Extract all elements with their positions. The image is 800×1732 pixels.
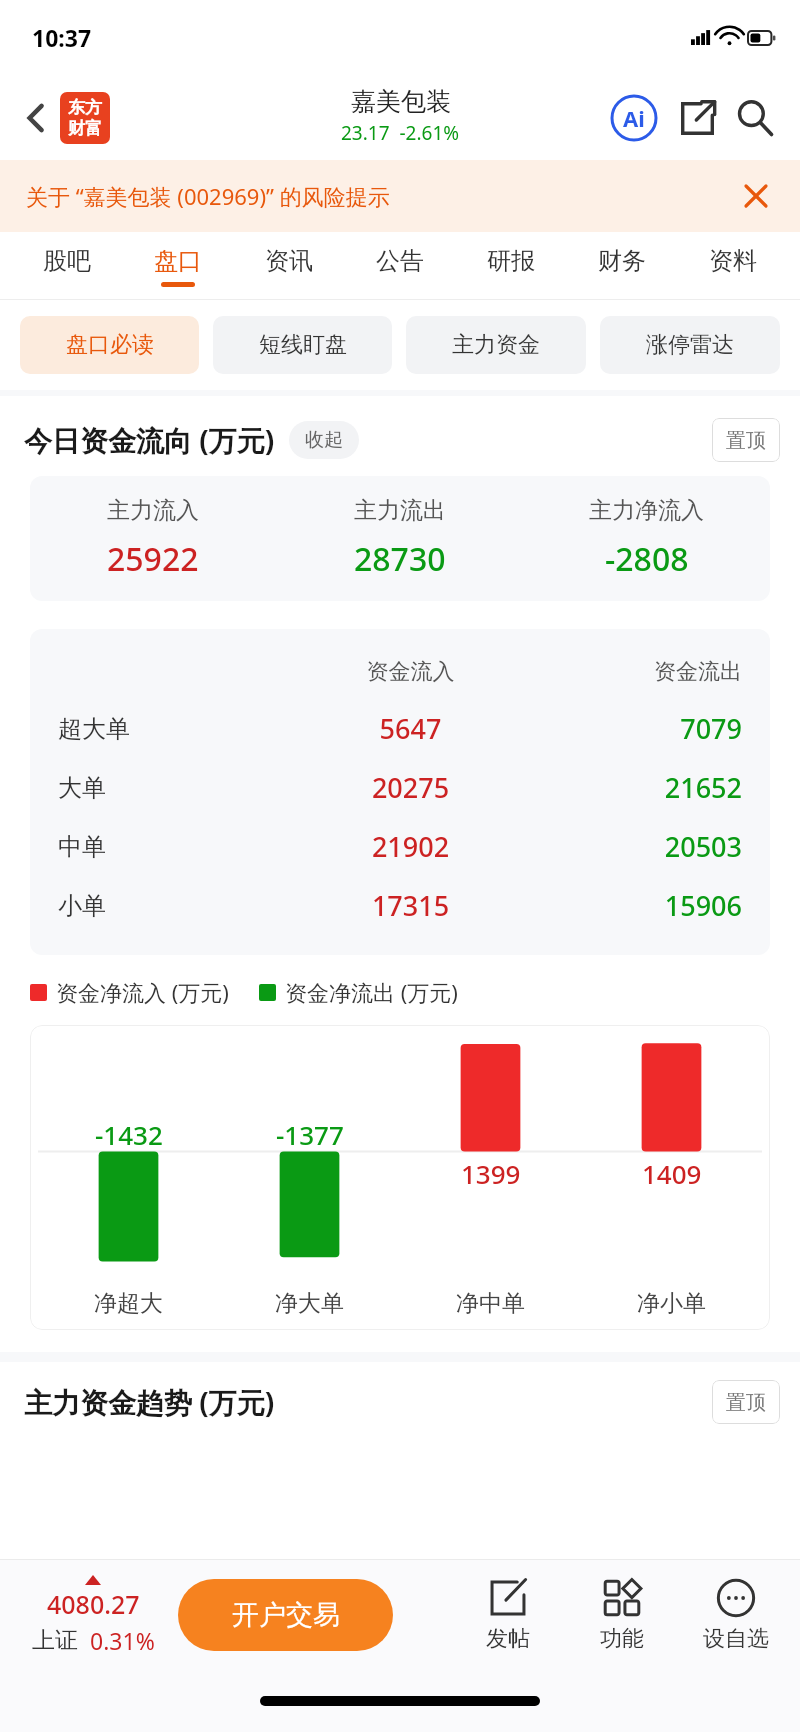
button[interactable]: 大单 <box>58 758 742 817</box>
staticText: 23.17 -2.61% <box>341 120 460 146</box>
staticText: 主力流入 <box>107 496 199 525</box>
staticText: 20503 <box>521 828 742 865</box>
staticText: Ai <box>623 103 645 133</box>
button[interactable]: 东方 <box>60 92 110 144</box>
button[interactable]: 4080.27 <box>18 1575 168 1656</box>
button[interactable]: 资讯 <box>233 232 344 300</box>
button[interactable]: Search <box>730 93 780 143</box>
staticText: 功能 <box>600 1625 644 1653</box>
button[interactable]: 中单 <box>58 817 742 876</box>
staticText: 置顶 <box>726 428 766 453</box>
staticText: 21652 <box>521 769 742 806</box>
button[interactable]: 小单 <box>58 876 742 935</box>
button[interactable]: Back <box>20 96 52 140</box>
staticText: 短线盯盘 <box>259 331 347 359</box>
staticText: 资金流入 <box>300 658 521 686</box>
staticText: 0.31% <box>90 1625 155 1656</box>
button[interactable]: 关于 “嘉美包装 (002969)” 的风险提示 <box>0 160 800 232</box>
button[interactable]: 公告 <box>344 232 455 300</box>
staticText: 公告 <box>376 246 424 276</box>
staticText: 东方 <box>68 97 102 118</box>
button[interactable]: 超大单 <box>58 699 742 758</box>
staticText: 21902 <box>300 828 521 865</box>
staticText: 研报 <box>487 246 535 276</box>
staticText: 主力资金趋势 (万元) <box>24 1383 275 1421</box>
staticText: 嘉美包装 <box>351 86 451 117</box>
staticText: 设自选 <box>703 1625 769 1653</box>
button[interactable]: 研报 <box>455 232 566 300</box>
staticText: 15906 <box>521 887 742 924</box>
button[interactable]: AI <box>608 92 660 144</box>
staticText: 大单 <box>58 773 300 803</box>
staticText: 1409 <box>642 1156 702 1191</box>
button[interactable]: Share <box>672 93 722 143</box>
staticText: 盘口 <box>154 246 202 276</box>
button[interactable]: 涨停雷达 <box>600 316 780 374</box>
button[interactable]: 置顶 <box>712 418 780 462</box>
button[interactable]: 盘口 <box>122 232 233 300</box>
button[interactable]: 设自选 <box>690 1577 782 1653</box>
staticText: 小单 <box>58 891 300 921</box>
staticText: 关于 “嘉美包装 (002969)” 的风险提示 <box>26 181 390 211</box>
staticText: 超大单 <box>58 714 300 744</box>
button[interactable]: Close <box>734 174 778 218</box>
staticText: -1377 <box>276 1117 344 1152</box>
staticText: 资料 <box>709 246 757 276</box>
staticText: 净中单 <box>400 1289 581 1318</box>
staticText: 25922 <box>107 537 199 581</box>
staticText: 盘口必读 <box>66 331 154 359</box>
staticText: 17315 <box>300 887 521 924</box>
staticText: 28730 <box>354 537 446 581</box>
staticText: 净大单 <box>219 1289 400 1318</box>
staticText: 资讯 <box>265 246 313 276</box>
button[interactable]: 收起 <box>289 421 359 459</box>
staticText: 主力资金 <box>452 331 540 359</box>
staticText: 中单 <box>58 832 300 862</box>
staticText: 净小单 <box>581 1289 762 1318</box>
button[interactable]: 股吧 <box>12 232 122 300</box>
staticText: 7079 <box>521 710 742 747</box>
button[interactable]: 开户交易 <box>178 1579 393 1651</box>
staticText: 1399 <box>461 1156 521 1191</box>
staticText: 资金净流出 (万元) <box>285 977 458 1007</box>
button[interactable]: 财务 <box>566 232 677 300</box>
staticText: 置顶 <box>726 1390 766 1415</box>
staticText: 主力净流入 <box>589 496 704 525</box>
button[interactable]: 发帖 <box>462 1577 554 1653</box>
staticText: 主力流出 <box>354 496 446 525</box>
staticText: 今日资金流向 (万元) <box>24 421 275 459</box>
staticText: 发帖 <box>486 1625 530 1653</box>
button[interactable]: 盘口必读 <box>20 316 199 374</box>
button[interactable]: 短线盯盘 <box>213 316 392 374</box>
staticText: 财务 <box>598 246 646 276</box>
staticText: -2808 <box>605 537 689 581</box>
staticText: 资金净流入 (万元) <box>56 977 229 1007</box>
staticText: 20275 <box>300 769 521 806</box>
staticText: -1432 <box>95 1117 163 1152</box>
staticText: 收起 <box>305 428 343 452</box>
staticText: 财富 <box>68 118 102 139</box>
staticText: 10:37 <box>32 22 92 53</box>
staticText: 净超大 <box>38 1289 219 1318</box>
button[interactable]: 功能 <box>576 1577 668 1653</box>
button[interactable]: 置顶 <box>712 1380 780 1424</box>
button[interactable]: 主力资金 <box>406 316 586 374</box>
staticText: 开户交易 <box>232 1598 340 1632</box>
button[interactable]: 资料 <box>677 232 788 300</box>
staticText: 股吧 <box>43 246 91 276</box>
staticText: 4080.27 <box>47 1587 140 1621</box>
staticText: 上证 <box>32 1626 78 1655</box>
staticText: 涨停雷达 <box>646 331 734 359</box>
staticText: 5647 <box>300 710 521 747</box>
staticText: 资金流出 <box>521 658 742 686</box>
